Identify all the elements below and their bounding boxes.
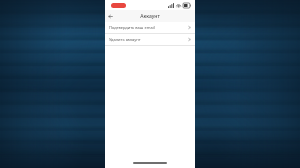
button[interactable]: Назад [105,11,116,22]
staticText: Удалить аккаунт [109,37,188,42]
staticText: Аккаунт [140,13,160,20]
button[interactable]: Подтвердить ваш email [105,22,195,33]
button[interactable]: Удалить аккаунт [105,34,195,45]
staticText: Подтвердить ваш email [109,25,188,30]
